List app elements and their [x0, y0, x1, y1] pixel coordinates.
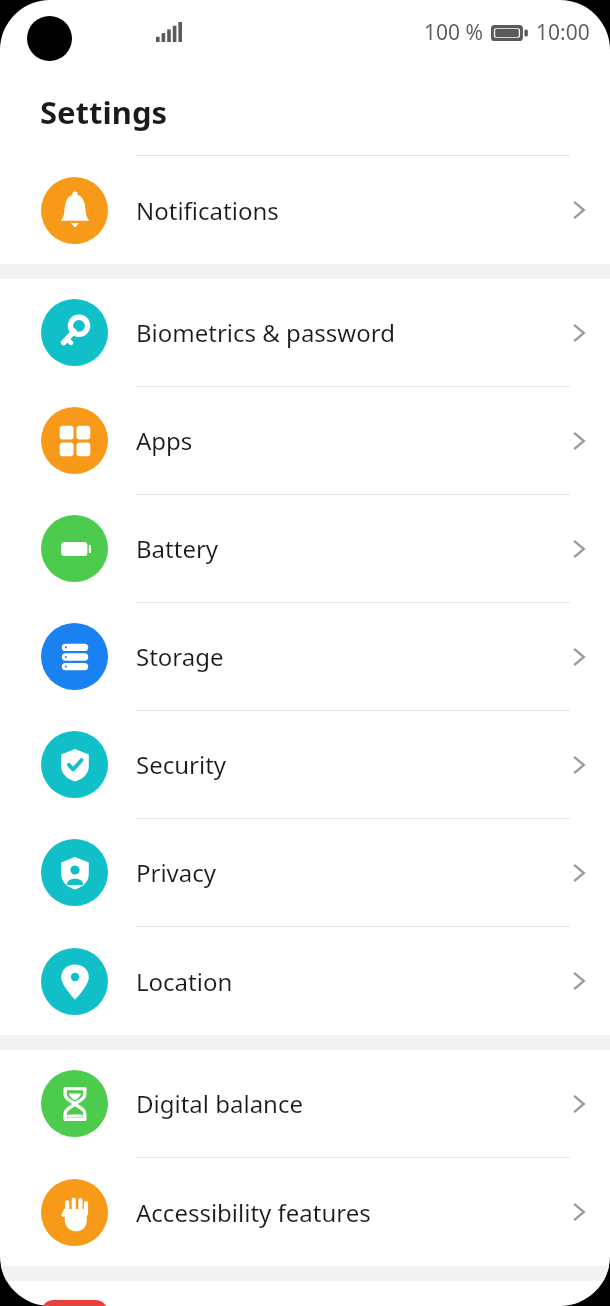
other: Open Biometrics & password	[568, 322, 590, 344]
other: Open Accessibility features	[568, 1201, 590, 1223]
button[interactable]: Apps	[0, 387, 610, 494]
staticText: 100 %	[424, 18, 483, 47]
other: Open Privacy	[568, 862, 590, 884]
staticText: Accessibility features	[136, 1196, 548, 1229]
button[interactable]: Biometrics & password	[0, 279, 610, 386]
button[interactable]: Storage	[0, 603, 610, 710]
staticText: Security	[136, 748, 548, 781]
staticText: Biometrics & password	[136, 316, 548, 349]
staticText: Battery	[136, 532, 548, 565]
button[interactable]: Location	[0, 927, 610, 1035]
button[interactable]: Privacy	[0, 819, 610, 926]
button[interactable]: Digital balance	[0, 1050, 610, 1157]
other: Open Notifications	[568, 199, 590, 221]
other: Open Storage	[568, 646, 590, 668]
staticText: Apps	[136, 424, 548, 457]
staticText: Notifications	[136, 194, 548, 227]
staticText: 10:00	[536, 18, 590, 47]
staticText: Storage	[136, 640, 548, 673]
other: Open Battery	[568, 538, 590, 560]
other: Open Location	[568, 970, 590, 992]
staticText: Digital balance	[136, 1087, 548, 1120]
other: Open Security	[568, 754, 590, 776]
staticText: Settings	[40, 91, 168, 133]
button[interactable]: Notifications	[0, 156, 610, 264]
button[interactable]: Battery	[0, 495, 610, 602]
button[interactable]: Accessibility features	[0, 1158, 610, 1266]
other: Open Digital balance	[568, 1093, 590, 1115]
button[interactable]: Security	[0, 711, 610, 818]
staticText: Privacy	[136, 856, 548, 889]
other: Open Apps	[568, 430, 590, 452]
staticText: Location	[136, 965, 548, 998]
